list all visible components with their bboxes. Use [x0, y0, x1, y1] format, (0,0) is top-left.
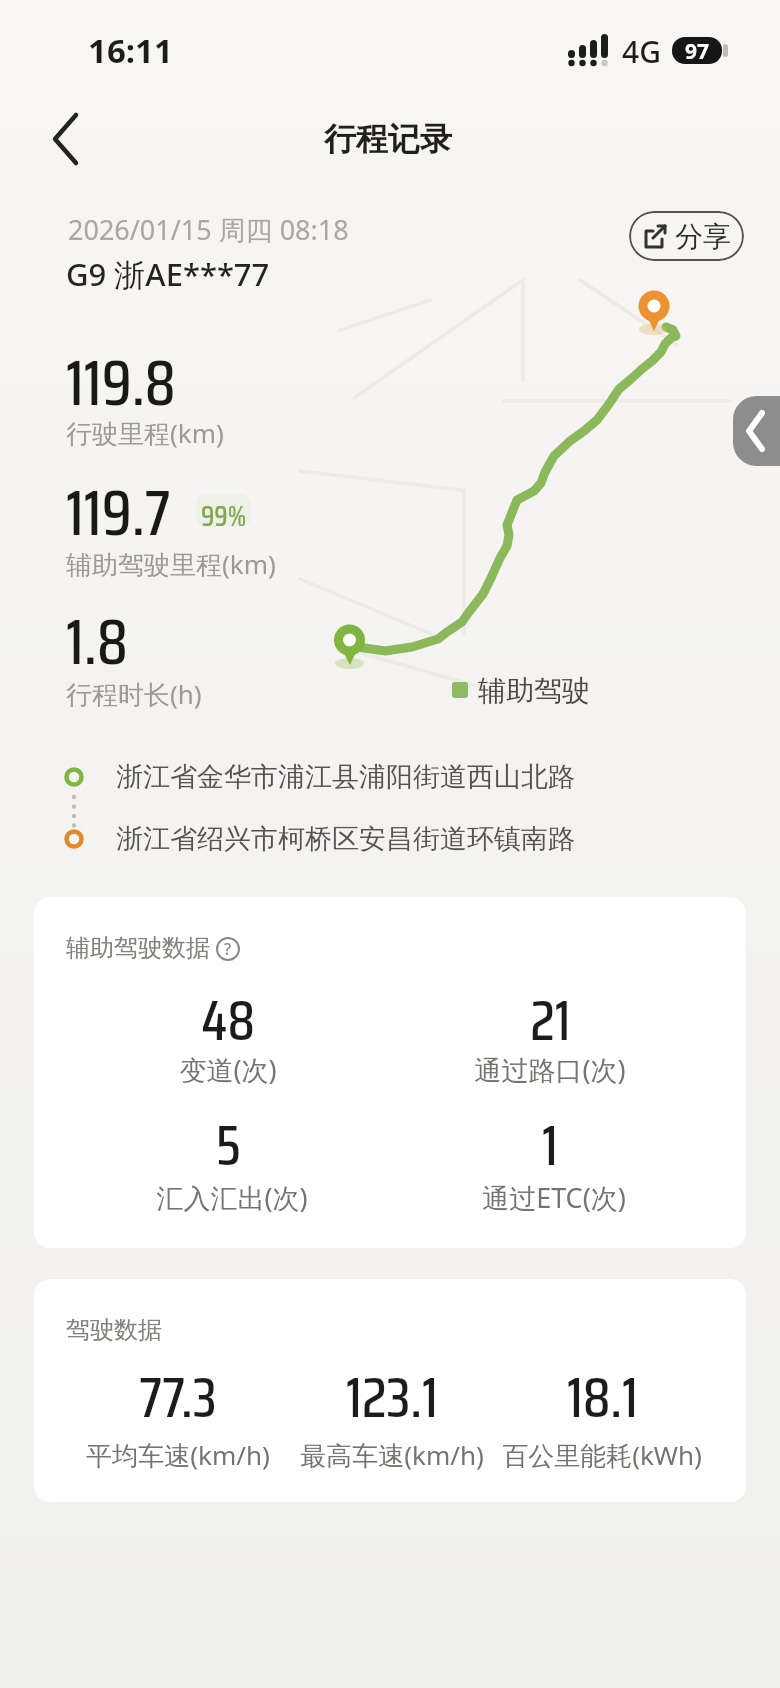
staticText: 最高车速(km/h) [300, 1437, 484, 1473]
button[interactable] [40, 112, 96, 168]
staticText: 2026/01/15 周四 08:18 [68, 211, 349, 248]
staticText: 16:11 [88, 28, 173, 73]
button[interactable]: ? [214, 935, 242, 963]
staticText: ? [224, 938, 232, 960]
staticText: 驾驶数据 [66, 1315, 162, 1345]
staticText: 77.3 [139, 1353, 217, 1441]
button[interactable] [733, 396, 780, 466]
staticText: 浙江省金华市浦江县浦阳街道西山北路 [116, 760, 575, 794]
staticText: 119.7 [66, 463, 171, 562]
staticText: 平均车速(km/h) [86, 1437, 270, 1473]
staticText: 行程时长(h) [66, 676, 202, 712]
staticText: 行驶里程(km) [66, 415, 224, 451]
staticText: 5 [216, 1101, 241, 1189]
staticText: 119.8 [66, 333, 176, 432]
staticText: 通过ETC(次) [482, 1179, 626, 1216]
staticText: 通过路口(次) [474, 1051, 626, 1088]
staticText: 97 [685, 37, 710, 64]
staticText: 4G [622, 31, 661, 72]
staticText: G9 浙AE***77 [66, 253, 270, 295]
staticText: 汇入汇出(次) [156, 1179, 308, 1216]
staticText: 百公里能耗(kWh) [502, 1437, 702, 1473]
staticText: 1.8 [66, 592, 128, 691]
button[interactable]: 分享 [629, 211, 744, 261]
staticText: 18.1 [567, 1353, 638, 1441]
staticText: 分享 [675, 219, 731, 254]
staticText: 辅助驾驶里程(km) [66, 546, 276, 582]
staticText: 变道(次) [179, 1051, 277, 1088]
staticText: 99% [201, 494, 247, 527]
staticText: 浙江省绍兴市柯桥区安昌街道环镇南路 [116, 822, 575, 856]
staticText: 123.1 [346, 1353, 438, 1441]
staticText: 21 [530, 976, 571, 1064]
staticText: 1 [542, 1101, 558, 1189]
staticText: 48 [201, 976, 255, 1064]
staticText: 辅助驾驶数据 [66, 933, 210, 963]
staticText: 行程记录 [324, 119, 452, 159]
staticText: 辅助驾驶 [478, 673, 590, 708]
